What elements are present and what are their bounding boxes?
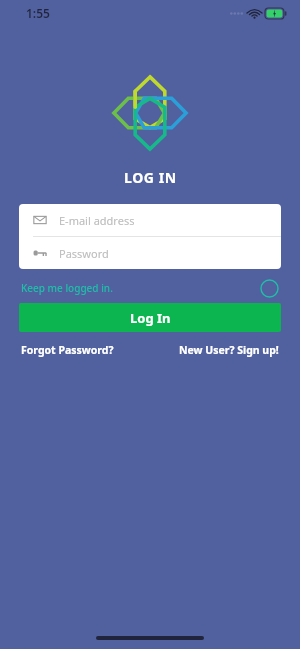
- button[interactable]: E-mail address: [19, 204, 281, 236]
- staticText: 1:55: [26, 5, 50, 21]
- staticText: Keep me logged in.: [21, 281, 113, 295]
- staticText: Forgot Password?: [21, 343, 114, 357]
- button[interactable]: Keep me logged in.: [21, 277, 279, 299]
- other: Keep me logged in toggle: [260, 279, 279, 298]
- staticText: E-mail address: [59, 213, 135, 228]
- button[interactable]: Forgot Password?: [21, 343, 114, 357]
- staticText: LOG IN: [124, 168, 177, 187]
- staticText: Log In: [130, 309, 171, 327]
- button[interactable]: New User? Sign up!: [179, 343, 279, 357]
- button[interactable]: Password: [19, 237, 281, 269]
- staticText: New User? Sign up!: [179, 343, 279, 357]
- button[interactable]: Log In: [19, 303, 281, 332]
- staticText: Password: [59, 246, 109, 261]
